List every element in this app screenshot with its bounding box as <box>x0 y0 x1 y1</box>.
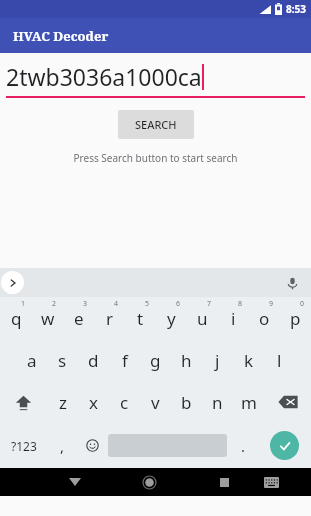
staticText: SEARCH <box>135 117 177 132</box>
staticText: n <box>212 391 223 414</box>
staticText: q <box>11 307 22 330</box>
staticText: 5 <box>145 299 150 309</box>
staticText: 8 <box>238 299 243 309</box>
button[interactable]: Home <box>126 468 173 496</box>
button[interactable]: a <box>16 339 47 381</box>
staticText: 0 <box>300 299 305 309</box>
button[interactable]: x <box>78 381 109 423</box>
button[interactable]: g <box>140 339 171 381</box>
button[interactable]: Recent apps <box>201 468 248 496</box>
button[interactable]: Backspace <box>264 381 311 423</box>
button[interactable]: u <box>187 297 218 339</box>
button[interactable]: y <box>156 297 187 339</box>
button[interactable]: w <box>32 297 63 339</box>
staticText: t <box>137 307 144 330</box>
button[interactable]: Switch keyboard <box>248 468 295 496</box>
staticText: i <box>231 307 236 330</box>
staticText: a <box>27 349 37 372</box>
staticText: h <box>181 349 192 372</box>
button[interactable]: v <box>140 381 171 423</box>
button[interactable]: n <box>202 381 233 423</box>
staticText: 1 <box>21 299 26 309</box>
staticText: ?123 <box>11 438 37 454</box>
staticText: u <box>197 307 208 330</box>
staticText: , <box>60 436 65 456</box>
staticText: e <box>74 307 84 330</box>
button[interactable]: SEARCH <box>118 110 194 139</box>
button[interactable]: o <box>249 297 280 339</box>
staticText: . <box>241 436 246 456</box>
staticText: y <box>167 307 176 330</box>
button[interactable]: , <box>47 423 77 468</box>
staticText: 9 <box>269 299 274 309</box>
staticText: c <box>120 391 129 414</box>
button[interactable]: ?123 <box>0 423 47 468</box>
button[interactable]: z <box>47 381 78 423</box>
button[interactable]: k <box>233 339 264 381</box>
staticText: 7 <box>207 299 212 309</box>
button[interactable]: h <box>171 339 202 381</box>
staticText: 6 <box>176 299 181 309</box>
staticText: j <box>215 349 220 372</box>
button[interactable]: m <box>233 381 264 423</box>
button[interactable]: e <box>63 297 94 339</box>
staticText: 8:53 <box>286 2 306 16</box>
button[interactable]: q <box>0 297 32 339</box>
button[interactable]: b <box>171 381 202 423</box>
button[interactable]: Emoji <box>77 423 107 468</box>
button[interactable]: Enter <box>270 431 299 460</box>
staticText: v <box>151 391 160 414</box>
button[interactable]: l <box>264 339 295 381</box>
button[interactable]: Back <box>51 468 98 496</box>
button[interactable]: j <box>202 339 233 381</box>
staticText: 3 <box>83 299 88 309</box>
button[interactable]: p <box>280 297 311 339</box>
staticText: o <box>259 307 270 330</box>
staticText: k <box>244 349 254 372</box>
staticText: 4 <box>114 299 119 309</box>
button[interactable]: r <box>94 297 125 339</box>
staticText: p <box>290 307 301 330</box>
staticText: s <box>58 349 67 372</box>
button[interactable]: t <box>125 297 156 339</box>
staticText: l <box>277 349 282 372</box>
button[interactable]: Voice input <box>281 272 303 294</box>
button[interactable]: c <box>109 381 140 423</box>
button[interactable]: 2twb3036a1000ca <box>6 61 305 92</box>
staticText: r <box>106 307 114 330</box>
staticText: b <box>181 391 192 414</box>
staticText: m <box>241 391 257 414</box>
staticText: f <box>122 349 128 372</box>
button[interactable]: . <box>228 423 258 468</box>
button[interactable]: i <box>218 297 249 339</box>
staticText: Press Search button to start search <box>0 151 311 165</box>
staticText: z <box>59 391 67 414</box>
staticText: 2twb3036a1000ca <box>6 61 202 92</box>
staticText: g <box>150 349 161 372</box>
staticText: 2 <box>52 299 57 309</box>
staticText: w <box>41 307 55 330</box>
button[interactable]: s <box>47 339 78 381</box>
button[interactable]: f <box>109 339 140 381</box>
button[interactable]: Expand suggestions <box>1 271 24 294</box>
staticText: x <box>89 391 98 414</box>
button[interactable]: d <box>78 339 109 381</box>
staticText: d <box>88 349 99 372</box>
button[interactable]: Shift <box>0 381 47 423</box>
staticText: HVAC Decoder <box>13 27 109 45</box>
